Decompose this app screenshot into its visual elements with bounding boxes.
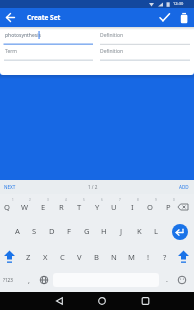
- staticText: ,: [28, 276, 30, 286]
- staticText: G: [84, 226, 90, 236]
- button[interactable]: [176, 10, 192, 25]
- staticText: ?: [163, 252, 167, 262]
- button[interactable]: I: [123, 199, 141, 215]
- button[interactable]: O: [141, 199, 159, 215]
- staticText: N: [111, 252, 117, 262]
- button[interactable]: !: [139, 249, 157, 265]
- button[interactable]: [136, 293, 152, 309]
- staticText: 7: [119, 198, 121, 202]
- button[interactable]: [177, 250, 190, 264]
- button[interactable]: S: [25, 223, 43, 239]
- button[interactable]: H: [95, 223, 113, 239]
- button[interactable]: [154, 10, 172, 25]
- staticText: 1: [12, 198, 14, 202]
- button[interactable]: C: [53, 249, 71, 265]
- staticText: 9: [155, 198, 157, 202]
- staticText: A: [15, 226, 20, 236]
- staticText: Q: [4, 202, 10, 212]
- button[interactable]: J: [112, 223, 130, 239]
- staticText: 0: [173, 198, 175, 202]
- button[interactable]: [3, 250, 16, 264]
- button[interactable]: ,: [20, 273, 38, 289]
- button[interactable]: Y: [88, 199, 106, 215]
- staticText: Y: [95, 202, 100, 212]
- button[interactable]: ?: [156, 249, 174, 265]
- staticText: R: [59, 202, 64, 212]
- staticText: 1 / 2: [88, 184, 98, 190]
- button[interactable]: [164, 180, 194, 194]
- staticText: !: [147, 252, 150, 262]
- staticText: V: [77, 252, 82, 262]
- button[interactable]: Q: [0, 199, 16, 215]
- staticText: L: [154, 226, 158, 236]
- button[interactable]: G: [78, 223, 96, 239]
- staticText: Create Set: [27, 13, 61, 22]
- staticText: 8: [137, 198, 139, 202]
- staticText: Definition: [100, 48, 124, 55]
- staticText: E: [41, 202, 46, 212]
- staticText: P: [166, 202, 171, 212]
- button[interactable]: [0, 180, 30, 194]
- button[interactable]: R: [52, 199, 70, 215]
- button[interactable]: [39, 275, 49, 285]
- staticText: ?123: [3, 277, 13, 283]
- staticText: photosynthesis: [5, 32, 41, 39]
- staticText: ADD: [179, 184, 189, 190]
- staticText: Term: [5, 48, 17, 55]
- button[interactable]: [50, 293, 66, 309]
- button[interactable]: K: [130, 223, 148, 239]
- button[interactable]: [2, 10, 18, 25]
- staticText: K: [137, 226, 142, 236]
- button[interactable]: [97, 27, 194, 45]
- button[interactable]: [177, 275, 187, 285]
- staticText: 4: [65, 198, 67, 202]
- button[interactable]: [0, 45, 97, 63]
- button[interactable]: B: [87, 249, 105, 265]
- button[interactable]: D: [43, 223, 61, 239]
- staticText: B: [94, 252, 99, 262]
- button[interactable]: [0, 27, 97, 45]
- staticText: Z: [26, 252, 31, 262]
- button[interactable]: [172, 224, 188, 240]
- staticText: Definition: [100, 32, 124, 39]
- staticText: T: [77, 202, 82, 212]
- button[interactable]: T: [70, 199, 88, 215]
- staticText: C: [60, 252, 65, 262]
- staticText: 6: [101, 198, 103, 202]
- staticText: X: [43, 252, 48, 262]
- button[interactable]: [97, 45, 194, 63]
- button[interactable]: A: [8, 223, 26, 239]
- staticText: J: [120, 226, 123, 236]
- staticText: I: [131, 202, 134, 212]
- staticText: F: [67, 226, 71, 236]
- staticText: O: [147, 202, 153, 212]
- button[interactable]: [93, 293, 109, 309]
- button[interactable]: U: [105, 199, 123, 215]
- staticText: NEXT: [4, 184, 16, 190]
- staticText: M: [128, 252, 135, 262]
- button[interactable]: Z: [19, 249, 37, 265]
- button[interactable]: .: [158, 272, 176, 288]
- button[interactable]: P: [159, 199, 177, 215]
- button[interactable]: M: [122, 249, 140, 265]
- staticText: H: [101, 226, 107, 236]
- button[interactable]: W: [16, 199, 34, 215]
- button[interactable]: F: [60, 223, 78, 239]
- staticText: 12:30: [173, 1, 184, 6]
- staticText: 5: [83, 198, 85, 202]
- button[interactable]: E: [34, 199, 52, 215]
- button[interactable]: L: [147, 223, 165, 239]
- staticText: S: [32, 226, 37, 236]
- staticText: .: [166, 275, 168, 285]
- staticText: W: [21, 202, 29, 212]
- staticText: D: [49, 226, 55, 236]
- button[interactable]: X: [36, 249, 54, 265]
- button[interactable]: [177, 203, 189, 212]
- button[interactable]: N: [105, 249, 123, 265]
- staticText: 2: [29, 198, 31, 202]
- staticText: 3: [47, 198, 49, 202]
- staticText: U: [111, 202, 117, 212]
- button[interactable]: V: [70, 249, 88, 265]
